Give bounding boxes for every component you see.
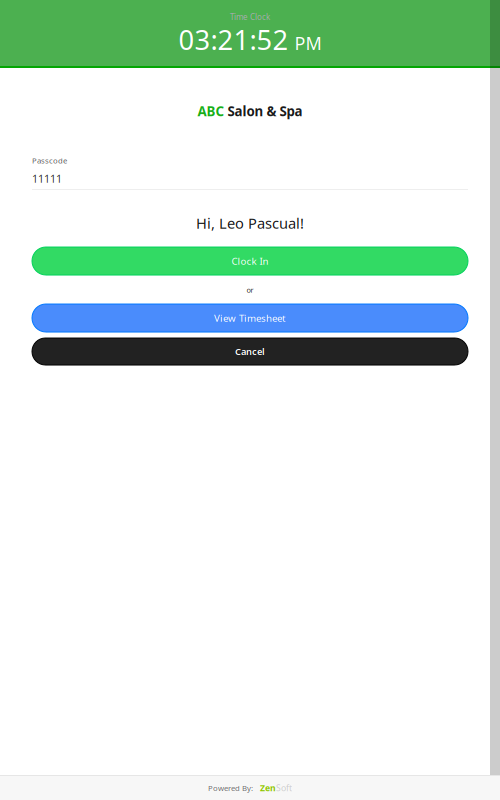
staticText: Zen [260, 782, 276, 794]
staticText: 03:21:52 [178, 21, 288, 58]
staticText: Salon & Spa [224, 102, 302, 120]
staticText: Passcode [32, 155, 67, 166]
staticText: Time Clock [230, 12, 270, 22]
button[interactable]: Passcode [32, 157, 468, 190]
staticText: Hi, Leo Pascual! [196, 213, 304, 233]
staticText: PM [294, 31, 321, 55]
button[interactable]: View Timesheet [32, 304, 468, 332]
staticText: or [246, 285, 253, 295]
staticText: Cancel [235, 345, 265, 358]
staticText: Soft [276, 782, 292, 794]
staticText: View Timesheet [214, 311, 286, 325]
staticText: 11111 [32, 171, 62, 186]
button[interactable]: Cancel [32, 338, 468, 365]
staticText: ABC [197, 102, 224, 120]
staticText: Powered By: [208, 783, 253, 793]
button[interactable]: Clock In [32, 247, 468, 275]
staticText: Clock In [231, 254, 268, 268]
